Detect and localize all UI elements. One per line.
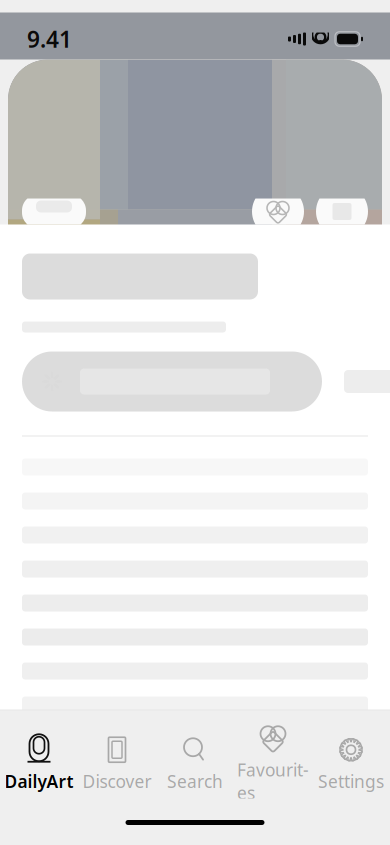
button[interactable]: Favourite (252, 185, 304, 237)
staticText: Favourites (237, 758, 309, 804)
button[interactable]: DailyArt (0, 731, 78, 797)
staticText: Settings (318, 770, 384, 793)
staticText: Discover (82, 770, 151, 793)
staticText: DailyArt (4, 770, 73, 793)
button[interactable]: Search (156, 731, 234, 797)
staticText: Search (167, 770, 223, 793)
staticText: 9.41 (27, 24, 72, 54)
button[interactable]: Share (316, 185, 368, 237)
button[interactable]: Favourites (234, 719, 312, 808)
button[interactable]: Settings (312, 731, 390, 797)
button[interactable]: Audio (22, 194, 86, 228)
button[interactable]: Discover (78, 731, 156, 797)
